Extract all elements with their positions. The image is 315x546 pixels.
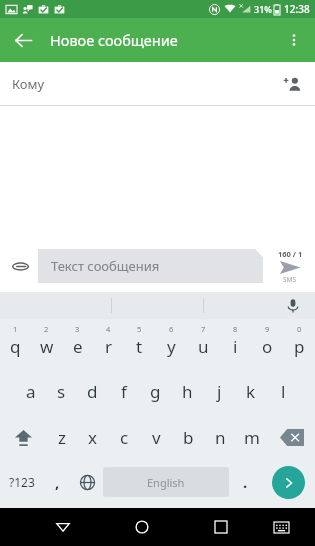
staticText: g <box>150 380 161 403</box>
staticText: x <box>88 426 97 449</box>
button[interactable]: b <box>172 414 204 460</box>
staticText: h <box>182 380 193 403</box>
button[interactable]: h <box>171 368 203 414</box>
button[interactable]: Attach <box>4 250 36 282</box>
button[interactable]: More options <box>277 23 311 57</box>
staticText: 31% <box>254 3 272 15</box>
staticText: 2 <box>44 324 49 334</box>
button[interactable]: 4 <box>93 320 124 368</box>
button[interactable]: Backspace <box>268 414 315 460</box>
staticText: b <box>183 426 194 449</box>
staticText: Новое сообщение <box>50 30 178 50</box>
button[interactable]: c <box>108 414 140 460</box>
button[interactable]: , <box>43 460 71 504</box>
staticText: w <box>40 335 54 358</box>
button[interactable]: x <box>77 414 108 460</box>
staticText: d <box>87 380 98 403</box>
staticText: z <box>58 426 66 449</box>
button[interactable]: Send SMS <box>270 249 310 284</box>
staticText: , <box>55 472 60 492</box>
staticText: 4 <box>106 324 111 334</box>
staticText: 12:38 <box>284 2 310 16</box>
staticText: Кому <box>12 75 45 93</box>
button[interactable]: Recent apps <box>197 508 244 546</box>
staticText: r <box>105 335 113 358</box>
button[interactable]: k <box>235 368 267 414</box>
staticText: . <box>243 472 248 492</box>
button[interactable]: Кому <box>0 62 315 105</box>
button[interactable]: Change language <box>71 460 103 504</box>
staticText: 5 <box>137 324 142 334</box>
staticText: m <box>244 426 260 449</box>
staticText: y <box>167 335 176 358</box>
staticText: s <box>57 380 66 403</box>
staticText: 3 <box>75 324 80 334</box>
button[interactable]: ?123 <box>0 460 43 504</box>
button[interactable]: v <box>140 414 172 460</box>
button[interactable]: 3 <box>62 320 93 368</box>
staticText: 1 <box>13 324 18 334</box>
staticText: 160 / 1 <box>278 249 303 259</box>
staticText: 7 <box>201 324 206 334</box>
button[interactable]: z <box>46 414 77 460</box>
staticText: English <box>147 475 185 490</box>
staticText: e <box>73 335 83 358</box>
button[interactable]: d <box>77 368 108 414</box>
button[interactable]: n <box>204 414 236 460</box>
button[interactable]: Enter <box>272 466 305 499</box>
button[interactable]: 1 <box>0 320 31 368</box>
button[interactable]: Shift <box>0 414 46 460</box>
button[interactable]: Add recipient <box>277 69 307 99</box>
button[interactable]: Back <box>39 508 86 546</box>
staticText: q <box>10 335 21 358</box>
staticText: p <box>294 335 305 358</box>
button[interactable]: 5 <box>124 320 155 368</box>
staticText: a <box>26 380 36 403</box>
button[interactable]: 6 <box>155 320 187 368</box>
staticText: i <box>233 335 238 358</box>
button[interactable]: 7 <box>187 320 219 368</box>
staticText: SMS <box>283 275 297 284</box>
button[interactable]: 8 <box>219 320 251 368</box>
staticText: 0 <box>297 324 302 334</box>
staticText: 9 <box>265 324 270 334</box>
button[interactable]: l <box>267 368 299 414</box>
button[interactable]: Switch keyboard <box>259 508 303 546</box>
button[interactable]: Home <box>118 508 165 546</box>
button[interactable]: English <box>103 467 229 497</box>
button[interactable]: 9 <box>251 320 283 368</box>
button[interactable]: m <box>236 414 268 460</box>
staticText: l <box>281 380 286 403</box>
button[interactable]: g <box>139 368 171 414</box>
button[interactable]: 2 <box>31 320 62 368</box>
staticText: j <box>217 380 222 403</box>
button[interactable]: Back <box>6 23 40 57</box>
staticText: n <box>215 426 226 449</box>
button[interactable]: 0 <box>283 320 315 368</box>
staticText: t <box>136 335 143 358</box>
button[interactable]: a <box>15 368 46 414</box>
staticText: k <box>246 380 256 403</box>
button[interactable]: f <box>108 368 139 414</box>
button[interactable]: j <box>203 368 235 414</box>
button[interactable]: s <box>46 368 77 414</box>
button[interactable]: . <box>229 460 261 504</box>
staticText: Текст сообщения <box>51 257 160 275</box>
staticText: v <box>152 426 161 449</box>
staticText: o <box>262 335 273 358</box>
staticText: f <box>121 380 127 403</box>
staticText: 8 <box>233 324 238 334</box>
staticText: ?123 <box>9 474 35 490</box>
button[interactable]: Voice input <box>281 294 305 318</box>
staticText: c <box>120 426 129 449</box>
staticText: u <box>198 335 209 358</box>
staticText: 6 <box>169 324 174 334</box>
